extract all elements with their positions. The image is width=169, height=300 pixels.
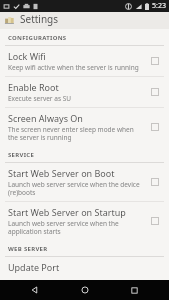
button[interactable]: Recents xyxy=(120,280,148,300)
staticText: Execute server as SU xyxy=(8,94,72,103)
staticText: The screen never enter sleep mode when t… xyxy=(8,125,143,142)
staticText: Launch web server service when the appli… xyxy=(8,219,143,236)
button[interactable]: Back xyxy=(21,280,49,300)
staticText: Update Port xyxy=(8,261,60,273)
staticText: Launch web server service when the devic… xyxy=(8,180,143,197)
staticText: Screen Always On xyxy=(8,112,83,124)
staticText: Start Web Server on Boot xyxy=(8,167,115,179)
button[interactable]: Toggle Screen Always On xyxy=(147,119,163,135)
staticText: CONFIGURATIONS xyxy=(8,34,67,42)
button[interactable]: Enable Root xyxy=(0,77,169,107)
staticText: Enable Root xyxy=(8,81,59,93)
button[interactable]: Lock Wifi xyxy=(0,46,169,76)
staticText: Keep wifi active when the server is runn… xyxy=(8,63,139,72)
button[interactable]: Home xyxy=(71,280,99,300)
button[interactable]: Toggle Lock Wifi xyxy=(147,53,163,69)
staticText: SERVICE xyxy=(8,151,35,159)
staticText: Lock Wifi xyxy=(8,50,46,62)
button[interactable]: Start Web Server on Boot xyxy=(0,163,169,201)
button[interactable]: Toggle Start Web Server on Startup xyxy=(147,213,163,229)
button[interactable]: Update Port xyxy=(0,257,169,280)
staticText: Settings xyxy=(20,12,59,26)
staticText: WEB SERVER xyxy=(8,245,48,253)
button[interactable]: Toggle Enable Root xyxy=(147,84,163,100)
button[interactable]: Start Web Server on Startup xyxy=(0,202,169,240)
button[interactable]: Screen Always On xyxy=(0,108,169,146)
button[interactable]: Toggle Start Web Server on Boot xyxy=(147,174,163,190)
staticText: 5:23 xyxy=(152,1,166,11)
staticText: Start Web Server on Startup xyxy=(8,206,126,218)
